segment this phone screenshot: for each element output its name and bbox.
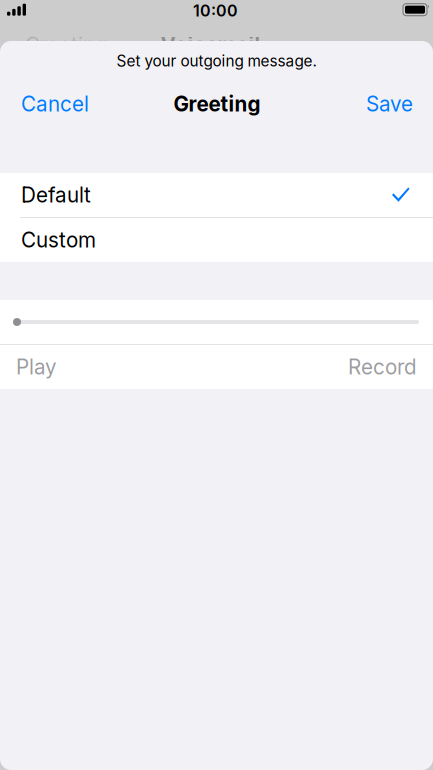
- staticText: Save: [366, 91, 413, 116]
- staticText: Default: [21, 182, 91, 207]
- staticText: Greeting: [173, 91, 260, 116]
- button[interactable]: Play: [16, 345, 176, 389]
- staticText: Cancel: [21, 91, 89, 116]
- staticText: Custom: [21, 227, 96, 252]
- button[interactable]: Custom: [0, 218, 433, 262]
- staticText: Record: [348, 354, 417, 379]
- staticText: 10:00: [193, 1, 238, 20]
- staticText: Greeting: [25, 32, 108, 57]
- staticText: Set your outgoing message.: [116, 52, 316, 70]
- staticText: Play: [16, 354, 57, 379]
- button[interactable]: Cancel: [21, 81, 131, 127]
- button[interactable]: Default: [0, 173, 433, 217]
- staticText: Voicemail: [160, 32, 260, 57]
- button[interactable]: Save: [303, 81, 413, 127]
- button[interactable]: Record: [257, 345, 417, 389]
